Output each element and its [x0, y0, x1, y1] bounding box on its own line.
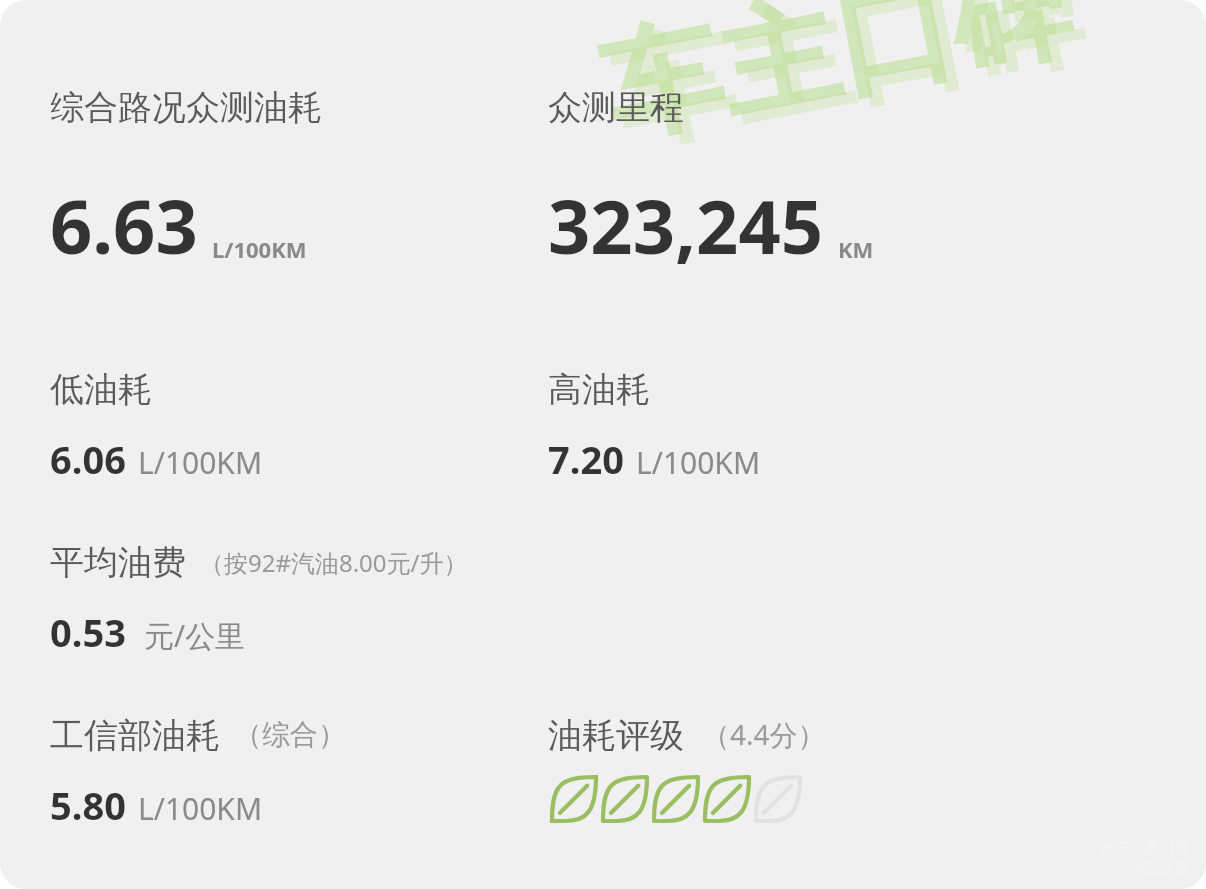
staticText: 6.63 [50, 175, 198, 276]
staticText: 7.20 [548, 433, 624, 485]
button[interactable]: 工信部油耗 [50, 714, 548, 831]
staticText: （综合） [234, 717, 346, 752]
button[interactable]: 众测里程 [548, 86, 874, 276]
button[interactable]: 高油耗 [548, 368, 761, 485]
staticText: 众测里程 [548, 86, 684, 129]
other: Fuel economy rating 4 of 5 [548, 771, 803, 829]
staticText: L/100KM [212, 234, 307, 264]
staticText: 车主口碑 [602, 0, 1094, 175]
staticText: 车主口碑 [590, 0, 1082, 167]
staticText: 高油耗 [548, 368, 650, 411]
staticText: 5.80 [50, 779, 126, 831]
staticText: 0.53 [50, 606, 126, 658]
staticText: 工信部油耗 [50, 714, 220, 757]
staticText: 6.06 [50, 433, 126, 485]
button[interactable]: 低油耗 [50, 368, 548, 485]
staticText: L/100KM [138, 788, 263, 829]
staticText: （按92#汽油8.00元/升） [200, 546, 468, 579]
staticText: L/100KM [636, 442, 761, 483]
staticText: 平均油费 [50, 541, 186, 584]
staticText: （4.4分） [702, 715, 826, 753]
staticText: 323,245 [548, 175, 824, 276]
button[interactable]: 综合路况众测油耗 [50, 86, 548, 276]
staticText: 油耗评级 [548, 714, 684, 757]
other: Watermark [590, 0, 1082, 167]
button[interactable]: 油耗评级 [548, 714, 826, 829]
button[interactable]: 平均油费 [50, 541, 468, 658]
staticText: 元/公里 [144, 615, 246, 656]
staticText: 低油耗 [50, 368, 152, 411]
staticText: L/100KM [138, 442, 263, 483]
staticText: 综合路况众测油耗 [50, 86, 322, 129]
staticText: KM [838, 234, 874, 264]
